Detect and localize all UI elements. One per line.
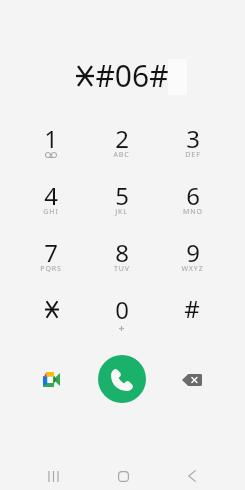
staticText: 5 — [115, 179, 129, 212]
staticText: GHI — [43, 207, 59, 217]
button[interactable]: Home — [105, 462, 141, 490]
button[interactable]: Video call — [33, 362, 69, 397]
button[interactable]: Call — [98, 355, 146, 403]
staticText: TUV — [114, 264, 130, 274]
staticText: 4 — [44, 179, 58, 212]
button[interactable]: 6 — [157, 168, 228, 225]
button[interactable]: Backspace — [174, 362, 210, 398]
staticText: ABC — [113, 150, 130, 160]
button[interactable]: Recent apps — [35, 462, 71, 490]
staticText: 1 — [44, 122, 58, 155]
staticText: 3 — [186, 122, 200, 155]
staticText: PQRS — [40, 264, 62, 274]
staticText: 8 — [115, 236, 129, 269]
button[interactable]: # — [157, 282, 228, 339]
staticText: WXYZ — [181, 264, 204, 274]
button[interactable]: 1 — [15, 111, 86, 168]
staticText: 0 — [115, 293, 129, 326]
staticText: DEF — [185, 150, 201, 160]
button[interactable]: 8 — [86, 225, 157, 282]
button[interactable]: 4 — [15, 168, 86, 225]
staticText: 6 — [186, 179, 200, 212]
button[interactable]: 5 — [86, 168, 157, 225]
button[interactable] — [15, 282, 86, 339]
button[interactable]: 0 — [86, 282, 157, 339]
button[interactable]: Back — [174, 462, 210, 490]
button[interactable]: 2 — [86, 111, 157, 168]
staticText: # — [184, 292, 200, 325]
staticText: JKL — [115, 207, 128, 217]
staticText: MNO — [183, 207, 203, 217]
button[interactable]: 3 — [157, 111, 228, 168]
button[interactable]: 9 — [157, 225, 228, 282]
staticText: #06# — [95, 55, 169, 96]
staticText: 7 — [44, 236, 58, 269]
button[interactable]: 7 — [15, 225, 86, 282]
staticText: 9 — [186, 236, 200, 269]
staticText: 2 — [115, 122, 129, 155]
